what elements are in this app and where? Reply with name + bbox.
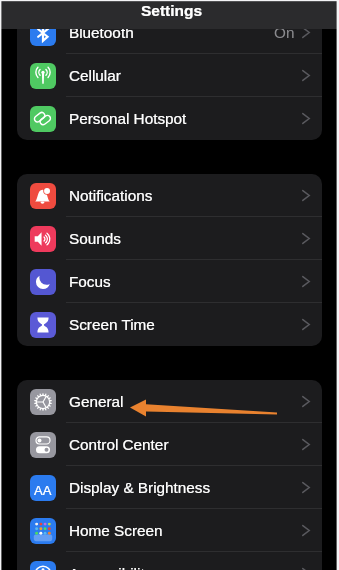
staticText: Accessibility	[69, 565, 153, 570]
button[interactable]: Accessibility	[17, 552, 322, 570]
staticText: Settings	[141, 2, 203, 19]
button[interactable]: Focus	[17, 260, 322, 303]
staticText: Sounds	[69, 230, 121, 247]
button[interactable]: Bluetooth	[17, 11, 322, 54]
staticText: Screen Time	[69, 316, 155, 333]
staticText: AA	[34, 483, 52, 498]
button[interactable]: Cellular	[17, 54, 322, 97]
staticText: Control Center	[69, 436, 169, 453]
button[interactable]: Screen Time	[17, 303, 322, 346]
button[interactable]: Control Center	[17, 423, 322, 466]
staticText: Focus	[69, 273, 111, 290]
staticText: Notifications	[69, 187, 153, 204]
staticText: On	[274, 24, 295, 41]
staticText: Personal Hotspot	[69, 110, 187, 127]
button[interactable]: Notifications	[17, 174, 322, 217]
button[interactable]: Sounds	[17, 217, 322, 260]
button[interactable]: AA	[17, 466, 322, 509]
staticText: Display & Brightness	[69, 479, 211, 496]
staticText: General	[69, 393, 124, 410]
staticText: Bluetooth	[69, 24, 134, 41]
staticText: Cellular	[69, 67, 121, 84]
button[interactable]: Personal Hotspot	[17, 97, 322, 140]
staticText: Home Screen	[69, 522, 163, 539]
button[interactable]: Home Screen	[17, 509, 322, 552]
button[interactable]: General	[17, 380, 322, 423]
